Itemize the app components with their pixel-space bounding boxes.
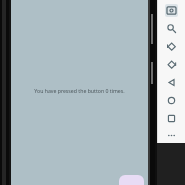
button[interactable]: Rotate right [157,55,185,73]
button[interactable]: Take screenshot [157,1,185,19]
staticText: You have pressed the button 0 times. [34,87,125,94]
button[interactable]: Overview [157,109,185,127]
button[interactable]: More [157,127,185,143]
button[interactable]: Zoom [157,19,185,37]
button[interactable]: Back [157,73,185,91]
button[interactable]: Rotate left [157,37,185,55]
button[interactable]: Add [119,175,144,185]
button[interactable]: Home [157,91,185,109]
